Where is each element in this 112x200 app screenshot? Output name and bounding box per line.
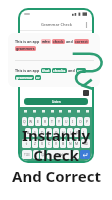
button[interactable]: A (25, 128, 31, 137)
staticText: , (36, 152, 37, 157)
button[interactable]: R (42, 117, 48, 126)
button[interactable]: . (73, 150, 79, 159)
staticText: R (44, 119, 47, 124)
button[interactable]: T (49, 117, 55, 126)
staticText: D (41, 130, 44, 135)
button[interactable]: J (67, 128, 73, 137)
staticText: English (55, 153, 64, 157)
staticText: U (65, 119, 68, 124)
button[interactable]: Toolbar action 7 (85, 109, 89, 113)
button[interactable]: Q (22, 117, 27, 126)
staticText: And Correct (12, 166, 101, 186)
button[interactable]: S (32, 128, 38, 137)
staticText: Q (23, 119, 26, 124)
staticText: G (55, 130, 58, 135)
button[interactable]: ?123 (22, 150, 32, 159)
button[interactable]: , (33, 150, 39, 159)
button[interactable]: X (39, 139, 45, 148)
button[interactable]: Toolbar action 2 (41, 109, 45, 113)
button[interactable]: Toolbar action 0 (23, 109, 27, 113)
button[interactable]: E (35, 117, 41, 126)
staticText: corr (77, 68, 85, 73)
button[interactable]: ⇧ (22, 139, 31, 148)
button[interactable]: ☺ (40, 150, 46, 159)
staticText: This is an app (15, 39, 41, 44)
staticText: grammar (16, 75, 33, 80)
button[interactable]: English (47, 150, 72, 159)
staticText: that (42, 68, 50, 73)
staticText: Y (58, 119, 60, 124)
button[interactable]: O (77, 117, 83, 126)
button[interactable]: U (63, 117, 69, 126)
staticText: L (83, 130, 85, 135)
button[interactable]: Toolbar action 5 (67, 109, 71, 113)
staticText: X (41, 141, 43, 146)
staticText: Listen (52, 100, 61, 104)
staticText: Grammar Check (41, 22, 72, 27)
staticText: er (36, 75, 40, 80)
staticText: ⇧ (25, 142, 28, 146)
button[interactable]: L (81, 128, 87, 137)
button[interactable]: D (39, 128, 45, 137)
staticText: Instantly Check (0, 125, 112, 165)
staticText: B (62, 141, 65, 146)
button[interactable]: F (46, 128, 52, 137)
staticText: K (76, 130, 79, 135)
staticText: P (86, 119, 89, 124)
button[interactable]: I (70, 117, 76, 126)
staticText: H (62, 130, 65, 135)
button[interactable]: Y (56, 117, 62, 126)
staticText: A (27, 130, 30, 135)
staticText: check (53, 39, 64, 44)
button[interactable]: N (67, 139, 73, 148)
staticText: who (42, 39, 50, 44)
staticText: C (48, 141, 51, 146)
staticText: J (70, 130, 71, 135)
button[interactable]: Toolbar action 1 (32, 109, 36, 113)
button[interactable]: G (53, 128, 59, 137)
staticText: V (55, 141, 58, 146)
button[interactable]: B (60, 139, 66, 148)
button[interactable]: W (28, 117, 34, 126)
button[interactable]: Toolbar action 4 (58, 109, 62, 113)
staticText: E (37, 119, 39, 124)
staticText: W (29, 119, 33, 124)
button[interactable]: C (46, 139, 52, 148)
staticText: correct (75, 39, 88, 44)
button[interactable]: ⌫ (81, 139, 90, 148)
staticText: T (51, 119, 53, 124)
button[interactable]: Listen (24, 98, 88, 105)
staticText: Z (34, 141, 36, 146)
staticText: ?123 (24, 153, 30, 157)
button[interactable]: V (53, 139, 59, 148)
staticText: ☺ (41, 153, 45, 157)
button[interactable]: Toolbar action 6 (76, 109, 80, 113)
staticText: . (76, 152, 77, 157)
button[interactable]: K (74, 128, 80, 137)
button[interactable]: This is an app (8, 33, 100, 87)
button[interactable]: H (60, 128, 66, 137)
button[interactable]: More options (85, 21, 88, 29)
staticText: N (69, 141, 72, 146)
staticText: ⌫ (83, 142, 88, 146)
staticText: checks (53, 68, 66, 73)
staticText: grammers (16, 46, 35, 51)
staticText: This is an app (15, 68, 41, 73)
staticText: O (79, 119, 82, 124)
staticText: and (67, 68, 76, 73)
staticText: S (34, 130, 36, 135)
staticText: I (72, 119, 74, 124)
staticText: F (48, 130, 50, 135)
button[interactable]: Enter (80, 150, 90, 159)
button[interactable]: M (74, 139, 80, 148)
button[interactable]: Z (32, 139, 38, 148)
staticText: M (75, 141, 79, 146)
button[interactable]: P (84, 117, 90, 126)
button[interactable]: Grammar Check (20, 18, 92, 31)
staticText: and (65, 39, 74, 44)
button[interactable]: Toolbar action 3 (50, 109, 54, 113)
